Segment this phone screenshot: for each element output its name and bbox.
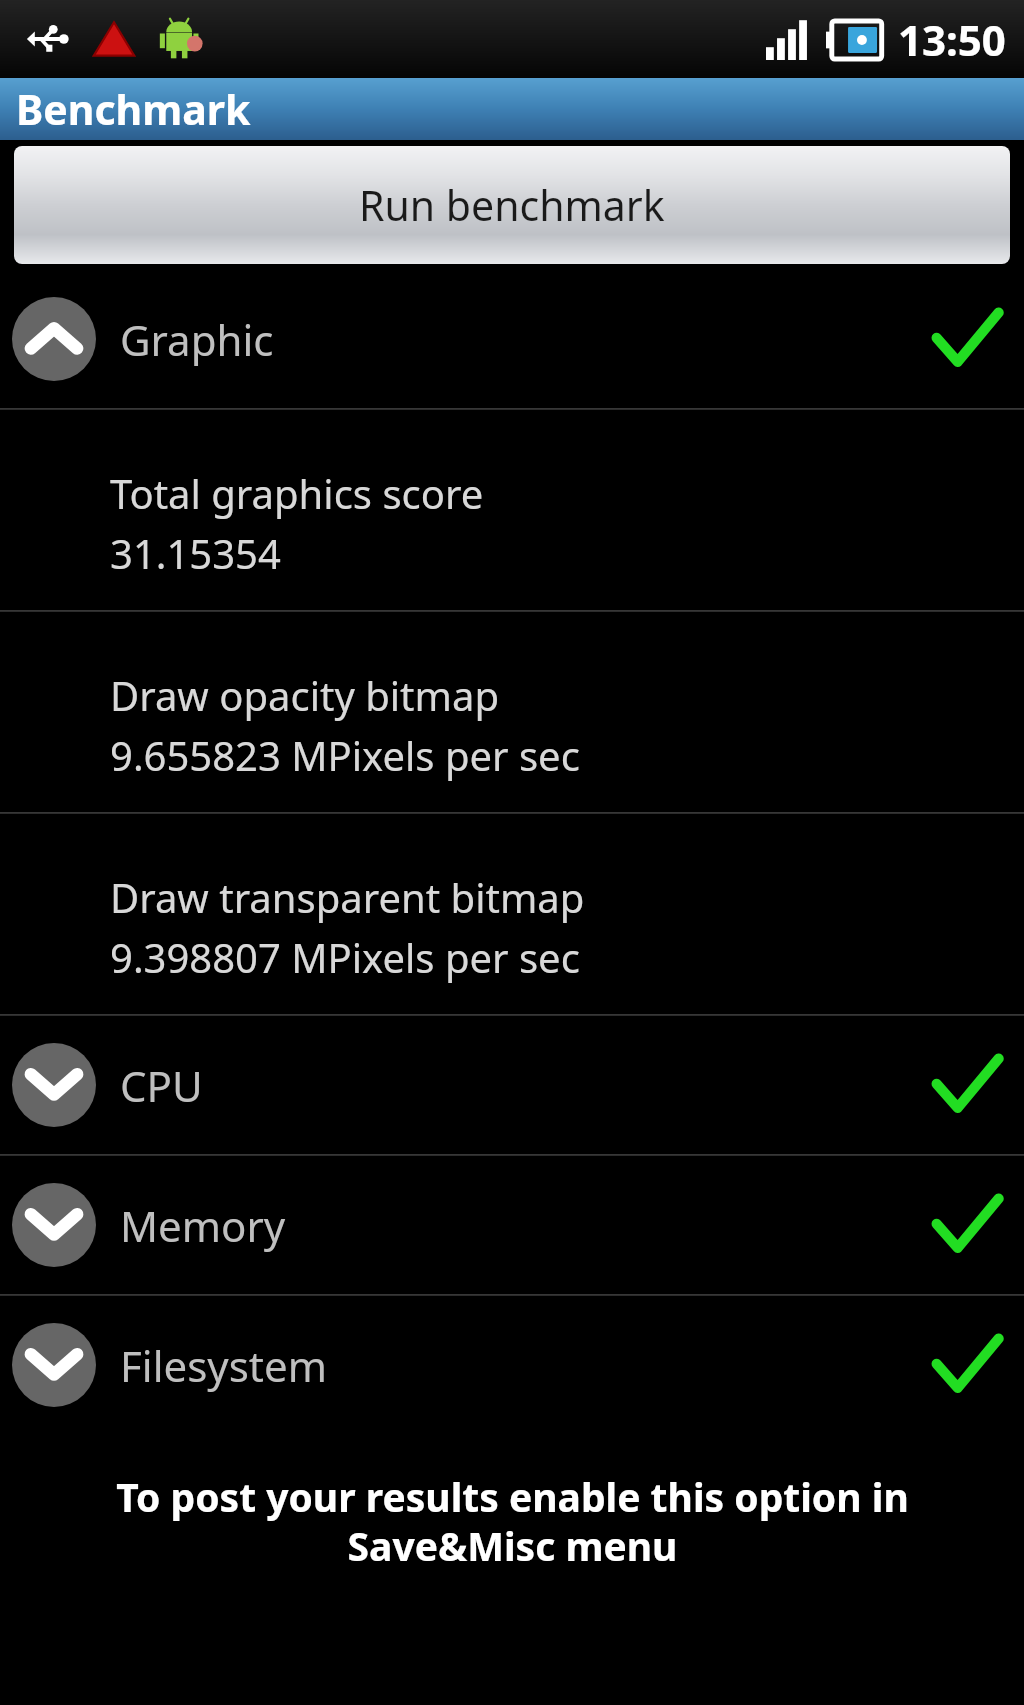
button[interactable]: Expand CPU [0, 1016, 1024, 1154]
other: Expand CPU [12, 1043, 96, 1127]
staticText: Run benchmark [359, 177, 665, 233]
staticText: Filesystem [120, 1337, 327, 1394]
staticText: Memory [120, 1197, 286, 1254]
staticText: 31.15354 [110, 526, 281, 580]
staticText: Benchmark [16, 81, 251, 137]
staticText: Total graphics score [110, 466, 484, 520]
button[interactable]: Total graphics score [0, 410, 1024, 610]
staticText: CPU [120, 1057, 203, 1114]
staticText: 13:50 [898, 11, 1006, 68]
button[interactable]: Draw opacity bitmap [0, 612, 1024, 812]
staticText: 9.655823 MPixels per sec [110, 728, 580, 782]
staticText: 9.398807 MPixels per sec [110, 930, 580, 984]
staticText: Graphic [120, 311, 274, 368]
staticText: To post your results enable this option … [116, 1470, 909, 1573]
other: Expand Filesystem [12, 1323, 96, 1407]
button[interactable]: Expand Filesystem [0, 1296, 1024, 1434]
button[interactable]: Collapse Graphic [0, 270, 1024, 408]
other: Expand Memory [12, 1183, 96, 1267]
staticText: Draw transparent bitmap [110, 870, 585, 924]
button[interactable]: Draw transparent bitmap [0, 814, 1024, 1014]
button[interactable]: Run benchmark [14, 146, 1010, 264]
other: Collapse Graphic [12, 297, 96, 381]
staticText: Draw opacity bitmap [110, 668, 499, 722]
button[interactable]: Expand Memory [0, 1156, 1024, 1294]
